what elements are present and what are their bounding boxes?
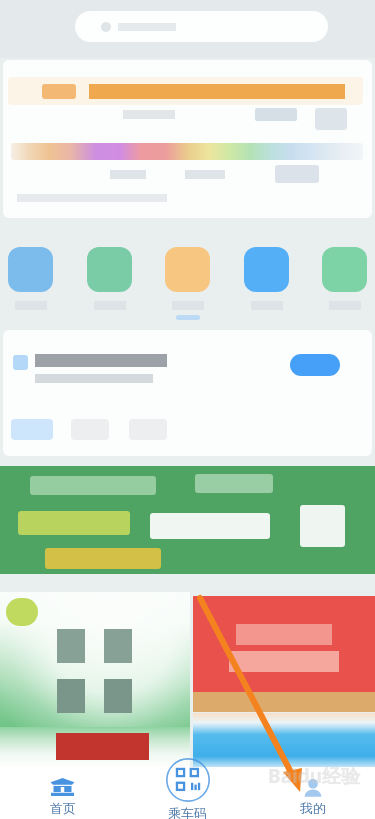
button[interactable] xyxy=(290,354,340,376)
staticText: 我的 xyxy=(300,800,326,816)
button[interactable] xyxy=(8,77,363,105)
button[interactable] xyxy=(87,247,132,310)
other: 我的 xyxy=(302,778,324,796)
button[interactable] xyxy=(0,466,375,574)
button[interactable] xyxy=(11,143,363,160)
other: 乘车码 xyxy=(165,757,211,803)
button[interactable]: 乘车码 xyxy=(125,757,250,819)
staticText: Baidu经验 xyxy=(268,763,361,789)
button[interactable] xyxy=(322,247,367,310)
staticText: 首页 xyxy=(50,800,76,816)
button[interactable]: 首页 xyxy=(0,767,125,819)
button[interactable] xyxy=(165,247,210,310)
button[interactable] xyxy=(0,592,190,727)
button[interactable] xyxy=(75,11,328,42)
button[interactable]: 我的 xyxy=(250,767,375,819)
button[interactable] xyxy=(244,247,289,310)
button[interactable] xyxy=(193,713,375,767)
button[interactable] xyxy=(8,247,53,310)
button[interactable] xyxy=(193,596,375,712)
other: 首页 xyxy=(50,778,75,796)
staticText: 乘车码 xyxy=(168,805,207,819)
button[interactable] xyxy=(11,419,53,440)
